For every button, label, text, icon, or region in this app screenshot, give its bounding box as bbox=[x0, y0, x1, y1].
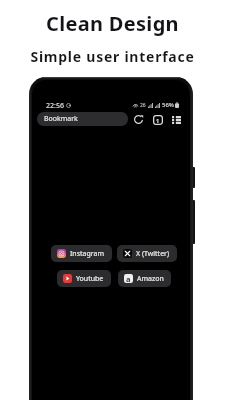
staticText: Clean Design bbox=[0, 10, 225, 37]
staticText: 1 bbox=[156, 117, 160, 124]
staticText: X (Twitter) bbox=[136, 249, 170, 259]
button[interactable]: Menu bbox=[170, 113, 183, 126]
staticText: Amazon bbox=[137, 274, 164, 284]
staticText: 56% bbox=[162, 101, 174, 109]
staticText: 26 bbox=[140, 102, 146, 109]
staticText: Bookmark bbox=[44, 114, 78, 124]
button[interactable]: Instagram bbox=[51, 245, 112, 262]
button[interactable]: a bbox=[118, 270, 171, 287]
staticText: Youtube bbox=[76, 274, 104, 284]
staticText: Simple user interface bbox=[0, 47, 225, 66]
button[interactable]: X (Twitter) bbox=[117, 245, 177, 262]
staticText: 22:56 bbox=[46, 101, 64, 109]
button[interactable]: Bookmark bbox=[37, 112, 128, 126]
button[interactable]: Youtube bbox=[57, 270, 111, 287]
button[interactable]: Refresh bbox=[132, 113, 145, 126]
button[interactable]: Tabs bbox=[151, 113, 164, 126]
staticText: Instagram bbox=[70, 249, 105, 259]
staticText: a bbox=[126, 274, 131, 283]
